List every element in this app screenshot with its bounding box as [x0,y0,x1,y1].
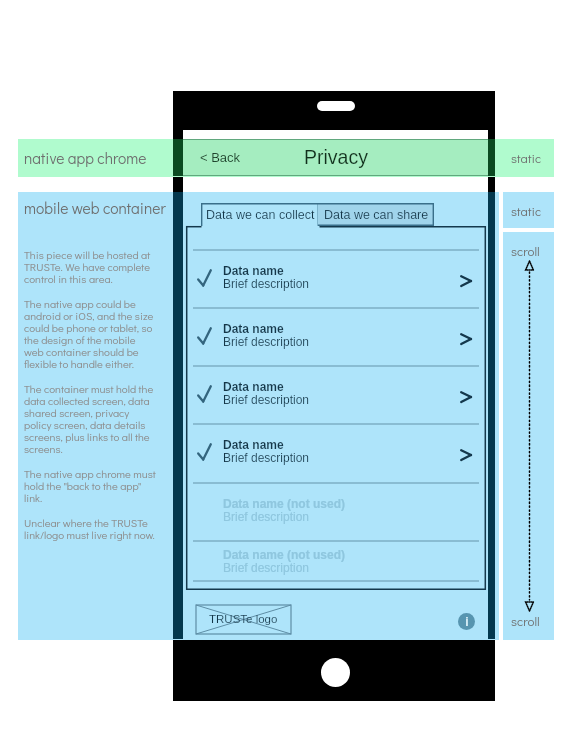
button[interactable]: TRUSTe logo [196,605,291,634]
button[interactable]: Information [458,613,475,630]
staticText: This piece will be hosted at TRUSTe. We … [24,247,151,286]
staticText: Unclear where the TRUSTe link/logo must … [24,515,155,542]
button[interactable]: Back [183,140,261,175]
button[interactable]: Data we can collect [201,203,319,226]
button[interactable]: Data we can share [318,203,434,226]
staticText: Data name [223,322,284,335]
button[interactable]: Data name (not used) [186,532,486,582]
staticText: native app chrome [24,148,147,168]
staticText: static [511,149,542,166]
staticText: The native app could be android or iOS, … [24,296,154,371]
staticText: The native app chrome must hold the "bac… [24,466,156,505]
staticText: Data we can collect [206,208,315,222]
staticText: Brief description [223,277,310,290]
staticText: Data name (not used) [223,497,346,510]
staticText: Brief description [223,451,310,464]
button[interactable]: Data name [186,248,486,306]
staticText: < Back [200,150,241,165]
staticText: Data name (not used) [223,548,346,561]
button[interactable]: Data name [186,364,486,422]
staticText: Data name [223,438,284,451]
staticText: Data we can share [324,208,429,222]
staticText: Brief description [223,561,310,574]
staticText: Privacy [304,146,368,168]
staticText: mobile web container [24,198,166,218]
button[interactable]: Data name [186,306,486,364]
staticText: i [465,615,469,628]
staticText: Data name [223,264,284,277]
staticText: Brief description [223,510,310,523]
staticText: The container must hold the data collect… [24,381,154,456]
button[interactable]: Data name (not used) [186,481,486,531]
staticText: Brief description [223,335,310,348]
staticText: TRUSTe logo [209,613,278,626]
staticText: static [511,202,542,219]
staticText: Brief description [223,393,310,406]
button[interactable]: Data name [186,422,486,480]
button[interactable]: Home [321,658,350,687]
staticText: scroll [511,612,540,629]
staticText: scroll [511,242,540,259]
staticText: Data name [223,380,284,393]
